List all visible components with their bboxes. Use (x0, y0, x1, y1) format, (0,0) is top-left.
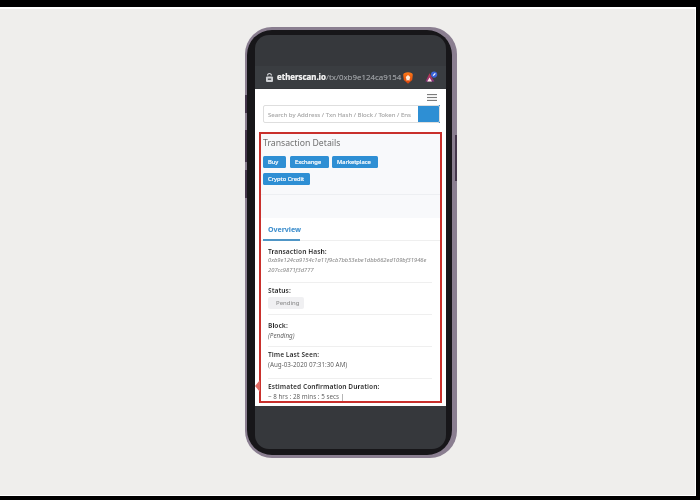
staticText: Time Last Seen: (268, 350, 320, 359)
staticText: 0xb9e124ca9154c1a11f9cb7bb53ebe1dbb662ed… (268, 256, 428, 274)
staticText: /tx/0xb9e124ca9154 (326, 72, 402, 83)
staticText: Marketplace (337, 158, 371, 166)
staticText: Overview (268, 225, 301, 235)
staticText: Transaction Details (263, 137, 341, 149)
staticText: Estimated Confirmation Duration: (268, 382, 380, 391)
button[interactable]: Pending (268, 297, 304, 309)
button[interactable]: Buy (263, 156, 286, 168)
button[interactable]: Exchange (290, 156, 329, 168)
button[interactable]: Search by Address / Txn Hash / Block / T… (263, 105, 440, 123)
staticText: Block: (268, 321, 288, 330)
staticText: etherscan.io (277, 72, 326, 83)
staticText: Exchange (295, 158, 322, 166)
button[interactable]: Secure (255, 66, 446, 88)
staticText: ~ 8 hrs : 28 mins : 5 secs | (268, 392, 345, 401)
staticText: Crypto Credit (268, 175, 305, 183)
staticText: Buy (268, 158, 279, 166)
staticText: (Aug-03-2020 07:31:30 AM) (268, 360, 348, 369)
button[interactable]: Marketplace (332, 156, 378, 168)
staticText: Pending (276, 299, 300, 307)
button[interactable]: Menu (423, 89, 441, 104)
staticText: Status: (268, 286, 291, 295)
button[interactable]: Crypto Credit (263, 173, 310, 185)
staticText: (Pending) (268, 331, 295, 340)
other: Profile (425, 71, 437, 83)
staticText: Transaction Hash: (268, 247, 327, 256)
staticText: Search by Address / Txn Hash / Block / T… (268, 110, 418, 118)
other: Secure (266, 73, 273, 82)
button[interactable]: Search (418, 105, 440, 123)
button[interactable]: Overview (263, 220, 300, 241)
other: Brave shields (403, 72, 413, 84)
